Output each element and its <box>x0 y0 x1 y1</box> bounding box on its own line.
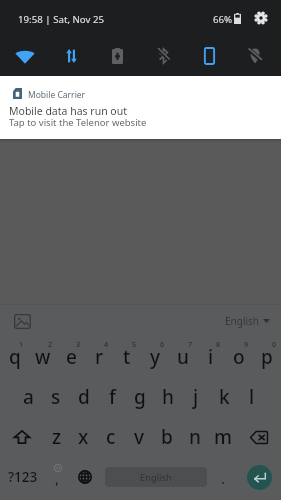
button[interactable]: l <box>238 377 266 417</box>
staticText: i <box>208 344 214 370</box>
staticText: 66% <box>213 13 233 26</box>
button[interactable]: t <box>113 337 141 377</box>
button[interactable]: y <box>141 337 169 377</box>
button[interactable]: Insert image <box>9 308 35 334</box>
button[interactable]: Backspace <box>237 417 281 457</box>
button[interactable]: English <box>99 457 213 497</box>
button[interactable]: b <box>153 417 181 457</box>
staticText: 19:58 | Sat, Nov 25 <box>18 13 105 26</box>
staticText: Mobile Carrier <box>28 89 86 101</box>
staticText: v <box>134 424 145 450</box>
button[interactable]: n <box>181 417 209 457</box>
button[interactable]: ?123 <box>0 457 45 497</box>
button[interactable]: Battery saver <box>94 36 140 76</box>
staticText: 6 <box>160 339 165 349</box>
staticText: j <box>193 384 199 410</box>
staticText: 1 <box>19 339 24 349</box>
button[interactable]: d <box>70 377 98 417</box>
button[interactable]: q <box>0 337 29 377</box>
button[interactable]: j <box>182 377 210 417</box>
staticText: 4 <box>104 339 109 349</box>
staticText: 3 <box>76 339 81 349</box>
staticText: x <box>78 424 89 450</box>
button[interactable]: English <box>225 314 270 328</box>
staticText: 5 <box>132 339 137 349</box>
staticText: 7 <box>188 339 193 349</box>
staticText: h <box>162 384 174 410</box>
button[interactable]: Mobile data <box>48 36 94 76</box>
button[interactable]: , <box>45 457 70 497</box>
staticText: f <box>109 384 116 410</box>
staticText: k <box>219 384 230 410</box>
staticText: r <box>95 344 104 370</box>
staticText: o <box>233 344 245 370</box>
staticText: Tap to visit the Telenor website <box>9 116 147 129</box>
staticText: m <box>214 424 232 450</box>
staticText: e <box>66 344 77 370</box>
staticText: p <box>261 344 273 370</box>
staticText: t <box>123 344 131 370</box>
button[interactable]: f <box>98 377 126 417</box>
staticText: u <box>177 344 189 370</box>
button[interactable]: Location <box>232 36 278 76</box>
staticText: English <box>225 314 260 328</box>
staticText: ?123 <box>8 468 38 486</box>
button[interactable]: Wi-Fi <box>2 36 48 76</box>
button[interactable]: c <box>97 417 125 457</box>
button[interactable]: Enter <box>237 457 281 497</box>
staticText: English <box>140 471 172 484</box>
staticText: z <box>52 424 62 450</box>
staticText: Mobile data has run out <box>9 104 127 118</box>
button[interactable]: Shift <box>0 417 43 457</box>
button[interactable]: h <box>154 377 182 417</box>
button[interactable]: w <box>29 337 57 377</box>
staticText: 0 <box>272 339 277 349</box>
button[interactable]: v <box>125 417 153 457</box>
staticText: 8 <box>216 339 221 349</box>
button[interactable]: m <box>209 417 237 457</box>
button[interactable]: o <box>225 337 253 377</box>
button[interactable]: p <box>253 337 281 377</box>
button[interactable]: i <box>197 337 225 377</box>
button[interactable]: Auto rotate <box>186 36 232 76</box>
staticText: g <box>134 384 146 410</box>
staticText: y <box>150 344 161 370</box>
staticText: a <box>23 384 34 410</box>
staticText: d <box>78 384 90 410</box>
button[interactable]: k <box>210 377 238 417</box>
button[interactable]: x <box>70 417 97 457</box>
button[interactable]: a <box>15 377 42 417</box>
button[interactable]: e <box>57 337 85 377</box>
staticText: , <box>55 468 60 488</box>
staticText: s <box>51 384 61 410</box>
staticText: w <box>35 344 51 370</box>
button[interactable]: r <box>85 337 113 377</box>
staticText: q <box>9 344 21 370</box>
button[interactable]: s <box>42 377 70 417</box>
button[interactable]: Mobile Carrier <box>0 76 281 139</box>
button[interactable]: z <box>43 417 70 457</box>
staticText: . <box>221 468 226 488</box>
staticText: l <box>249 384 255 410</box>
staticText: b <box>161 424 173 450</box>
staticText: 2 <box>48 339 53 349</box>
staticText: 9 <box>244 339 249 349</box>
button[interactable]: Change keyboard language <box>70 457 99 497</box>
button[interactable]: g <box>126 377 154 417</box>
button[interactable]: Bluetooth <box>140 36 186 76</box>
button[interactable]: Settings <box>254 11 268 25</box>
staticText: n <box>189 424 201 450</box>
staticText: c <box>106 424 116 450</box>
button[interactable]: u <box>169 337 197 377</box>
